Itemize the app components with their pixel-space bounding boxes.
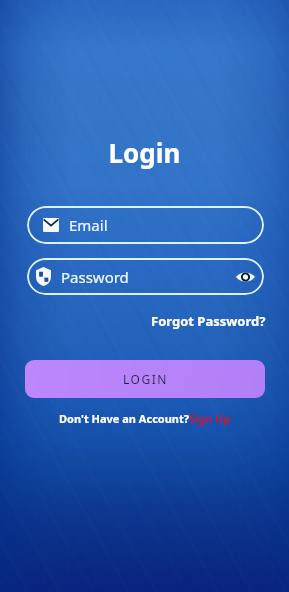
staticText: Password (61, 267, 129, 287)
staticText: Email (69, 215, 108, 235)
staticText: LOGIN (123, 371, 168, 387)
button[interactable]: Show password (233, 265, 257, 289)
button[interactable]: Sign Up (189, 411, 231, 426)
staticText: Don't Have an Account? (59, 411, 189, 426)
staticText: Login (0, 135, 289, 170)
button[interactable]: Password (27, 258, 264, 295)
button[interactable]: Email (27, 206, 264, 244)
button[interactable]: Forgot Password? (151, 312, 266, 330)
button[interactable]: LOGIN (25, 360, 265, 398)
